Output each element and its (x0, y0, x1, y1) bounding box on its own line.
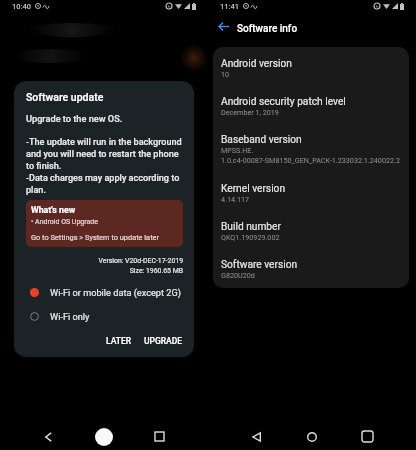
staticText: What's new (31, 205, 76, 215)
staticText: -The update will run in the background a… (26, 137, 183, 195)
button[interactable]: Back (239, 423, 273, 450)
button[interactable]: Recent apps (142, 423, 176, 450)
staticText: 11:41 (220, 2, 240, 11)
staticText: Software version (221, 259, 298, 271)
staticText: 10 (221, 70, 230, 78)
staticText: Android security patch level (221, 96, 346, 108)
button[interactable]: Wi-Fi or mobile data (except 2G) (26, 287, 183, 298)
staticText: 10:40 (12, 2, 32, 11)
staticText: UPGRADE (144, 336, 183, 346)
button[interactable]: Home (87, 423, 121, 450)
staticText: Baseband version (221, 134, 302, 146)
staticText: Software info (237, 23, 298, 35)
button[interactable]: Kernel version (221, 174, 401, 212)
button[interactable]: Recent apps (350, 423, 384, 450)
staticText: Kernel version (221, 183, 286, 195)
staticText: • Android OS Upgrade (31, 218, 98, 226)
button[interactable]: Baseband version (221, 125, 401, 174)
button[interactable]: Android version (221, 49, 401, 87)
button[interactable]: Home (295, 423, 329, 450)
button[interactable]: Back (212, 19, 231, 38)
staticText: Android version (221, 58, 292, 70)
button[interactable]: Build number (221, 212, 401, 250)
button[interactable]: Back (31, 423, 65, 450)
staticText: Wi-Fi or mobile data (except 2G) (50, 287, 181, 298)
button[interactable]: Android security patch level (221, 87, 401, 125)
staticText: Software update (26, 91, 104, 103)
staticText: Go to Settings > System to update later (31, 233, 159, 242)
staticText: Wi-Fi only (50, 311, 90, 322)
staticText: QKQ1.190929.002 (221, 233, 280, 241)
staticText: LATER (106, 336, 132, 346)
staticText: 4.14.117 (221, 195, 250, 203)
button[interactable]: Wi-Fi only (26, 311, 183, 322)
staticText: MPSS.HE. 1.0.c4-00087-SM8150_GEN_PACK-1.… (221, 146, 400, 165)
button[interactable]: LATER (102, 334, 136, 348)
staticText: December 1, 2019 (221, 108, 279, 116)
staticText: Build number (221, 221, 281, 233)
button[interactable]: Software version (221, 250, 401, 288)
staticText: Version: V20d-DEC-17-2019 (26, 257, 183, 265)
staticText: Size: 1960.65 MB (26, 267, 183, 275)
staticText: Upgrade to the new OS. (26, 113, 123, 124)
button[interactable]: UPGRADE (140, 334, 183, 348)
staticText: G820U20d (221, 271, 255, 279)
